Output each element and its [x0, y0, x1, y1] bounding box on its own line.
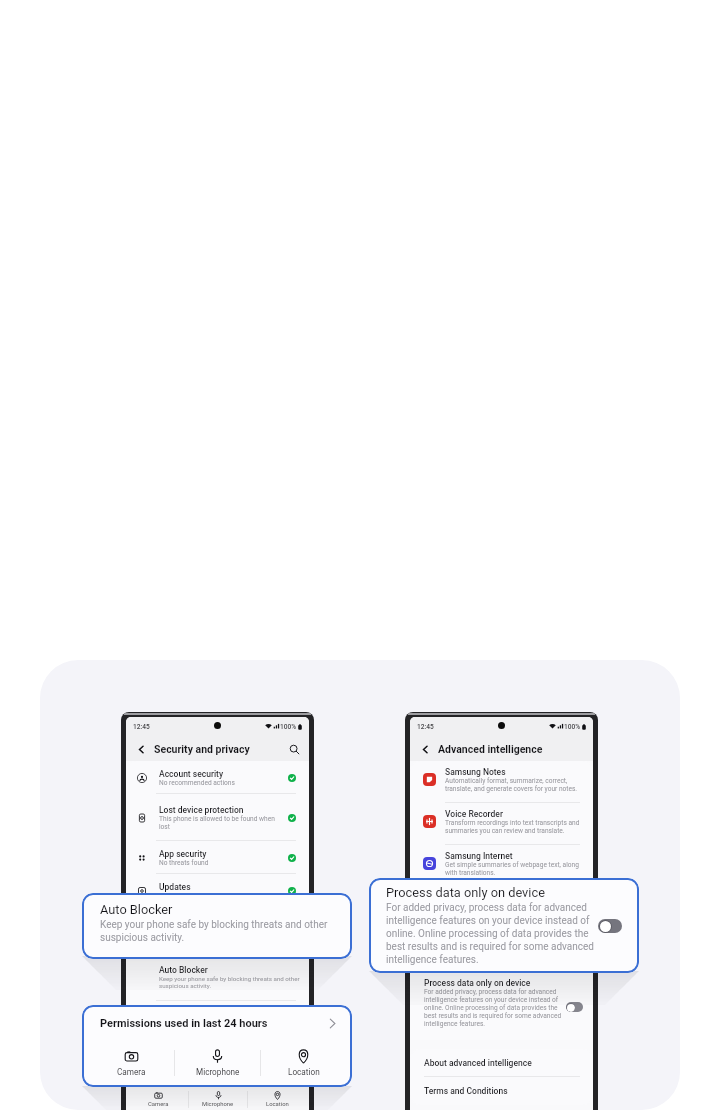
button[interactable]: Toggle process data only on device	[598, 919, 622, 933]
staticText: Samsung Internet	[445, 851, 513, 861]
staticText: Auto Blocker	[100, 902, 173, 917]
staticText: Microphone	[196, 1067, 240, 1077]
button[interactable]: Process data only on device	[410, 971, 593, 1040]
staticText: Terms and Conditions	[424, 1086, 508, 1096]
staticText: 100%	[564, 723, 581, 731]
button[interactable]: Updates	[126, 874, 309, 907]
button[interactable]: Location	[248, 1091, 306, 1108]
staticText: Automatically format, summarize, correct…	[445, 777, 581, 793]
button[interactable]: Samsung Internet	[410, 845, 593, 887]
button[interactable]: Search	[287, 742, 301, 756]
staticText: 12:45	[133, 723, 150, 731]
staticText: Location	[266, 1101, 289, 1108]
staticText: Security and privacy	[154, 743, 250, 755]
staticText: Samsung Notes	[445, 767, 506, 777]
button[interactable]: Process data only on device	[369, 878, 639, 973]
button[interactable]: Account security	[126, 761, 309, 794]
staticText: Process data only on device	[386, 885, 545, 900]
staticText: Camera	[117, 1067, 146, 1077]
staticText: Transform recordings into text transcrip…	[445, 819, 581, 835]
staticText: No recommended actions	[159, 779, 235, 787]
button[interactable]: Auto Blocker	[126, 954, 309, 1001]
staticText: 100%	[280, 723, 297, 731]
button[interactable]: Privacy dashboard	[126, 907, 309, 954]
button[interactable]: Lost device protection	[126, 794, 309, 841]
staticText: Process data only on device	[424, 978, 531, 988]
staticText: See which apps recently used permissions	[159, 932, 276, 939]
button[interactable]: Location	[261, 1049, 346, 1077]
staticText: No threats found	[159, 859, 209, 867]
staticText: Get simple summaries of webpage text, al…	[445, 861, 581, 877]
button[interactable]: Back	[418, 742, 432, 756]
staticText: Checked just now	[159, 892, 211, 900]
staticText: Auto Blocker	[159, 965, 208, 975]
button[interactable]: Toggle process data only on device	[566, 1002, 583, 1012]
button[interactable]: Samsung Notes	[410, 761, 593, 803]
button[interactable]: Call & text	[410, 929, 593, 971]
staticText: Samsung Keyboard	[445, 893, 519, 903]
button[interactable]: About advanced intelligence	[410, 1049, 593, 1077]
staticText: For added privacy, process data for adva…	[424, 988, 564, 1028]
staticText: App security	[159, 849, 207, 859]
button[interactable]: Auto Blocker	[82, 893, 352, 959]
button[interactable]: Samsung Keyboard	[410, 887, 593, 929]
staticText: Account security	[159, 769, 224, 779]
staticText: Updates	[159, 882, 191, 892]
button[interactable]: Microphone	[175, 1049, 260, 1077]
staticText: Lost device protection	[159, 805, 244, 815]
button[interactable]: Camera	[129, 1091, 188, 1108]
staticText: Permissions used in last 24 hours	[137, 1020, 247, 1028]
staticText: Call & text	[445, 935, 484, 945]
staticText: Keep your phone safe by blocking threats…	[159, 975, 302, 990]
button[interactable]: Permissions used in last 24 hours	[126, 1010, 309, 1028]
staticText: Privacy dashboard	[159, 922, 230, 932]
staticText: Keep your phone safe by blocking threats…	[100, 919, 340, 943]
button[interactable]: Camera	[88, 1049, 174, 1077]
staticText: Permissions used in last 24 hours	[100, 1017, 268, 1030]
staticText: About advanced intelligence	[424, 1058, 532, 1068]
button[interactable]: Permissions used in last 24 hours	[82, 1005, 352, 1087]
staticText: For added privacy, process data for adva…	[386, 902, 598, 965]
staticText: Translate calls in real time and get sum…	[445, 945, 581, 961]
button[interactable]: Voice Recorder	[410, 803, 593, 845]
staticText: Advanced intelligence	[438, 743, 543, 755]
button[interactable]: Back	[134, 742, 148, 756]
staticText: 12:45	[417, 723, 434, 731]
staticText: Get writing suggestions, spelling and gr…	[445, 903, 581, 919]
staticText: Voice Recorder	[445, 809, 503, 819]
staticText: Location	[288, 1067, 320, 1077]
button[interactable]: Terms and Conditions	[410, 1077, 593, 1105]
staticText: Camera	[148, 1101, 169, 1108]
button[interactable]: App security	[126, 841, 309, 874]
button[interactable]: Microphone	[189, 1091, 247, 1108]
staticText: Microphone	[202, 1101, 234, 1108]
staticText: This phone is allowed to be found when l…	[159, 815, 285, 831]
